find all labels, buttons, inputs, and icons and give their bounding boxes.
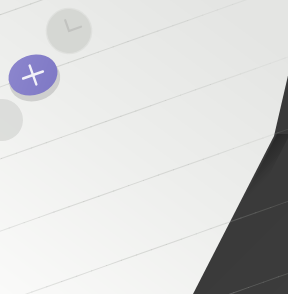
button[interactable]: Tasks list [0, 0, 288, 294]
